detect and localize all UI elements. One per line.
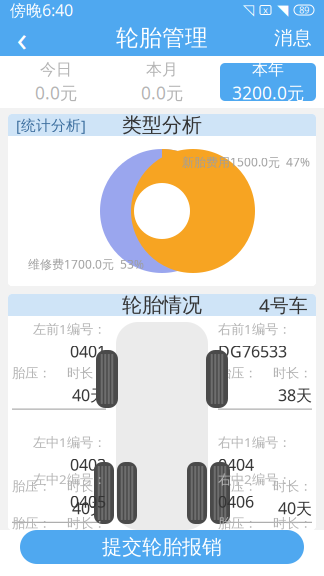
staticText: 0.0元 (35, 81, 77, 104)
staticText: 本月 (146, 60, 178, 79)
staticText: 胎压： (218, 515, 257, 532)
staticText: 时长： (67, 478, 106, 495)
staticText: 新胎费用1500.0元 47% (182, 154, 310, 170)
staticText: 胎压： (12, 478, 51, 495)
staticText: 0404 (218, 454, 254, 475)
staticText: 0403 (70, 454, 106, 475)
staticText: 40天 (72, 384, 106, 405)
staticText: 轮胎情况 (122, 293, 202, 317)
staticText: ◹ (243, 2, 254, 18)
staticText: 提交轮胎报销 (102, 535, 222, 559)
staticText: 右中2编号： (218, 470, 291, 488)
staticText: 左中2编号： (33, 470, 106, 488)
button[interactable]: 本月 (114, 63, 210, 101)
staticText: 今日 (40, 60, 72, 79)
staticText: ◥ (277, 2, 288, 18)
staticText: 胎压： (12, 365, 51, 381)
staticText: 类型分析 (122, 113, 202, 137)
staticText: 89 (299, 4, 309, 16)
staticText: 3200.0元 (232, 81, 304, 104)
staticText: 胎压： (218, 365, 257, 381)
staticText: 40天 (278, 534, 312, 556)
staticText: DG76533 (218, 341, 287, 362)
staticText: 本年 (252, 60, 284, 79)
staticText: 右前1编号： (218, 320, 291, 338)
staticText: 时长： (273, 515, 312, 532)
button[interactable]: Back (0, 20, 44, 56)
staticText: ‹ (16, 15, 27, 61)
staticText: 右中1编号： (218, 433, 291, 451)
button[interactable]: 今日 (8, 63, 104, 101)
staticText: 傍晚6:40 (10, 0, 73, 21)
staticText: 消息 (274, 26, 312, 49)
staticText: 0406 (218, 491, 254, 512)
staticText: 40天 (72, 534, 106, 556)
staticText: 0.0元 (141, 81, 183, 104)
staticText: x (263, 4, 268, 16)
staticText: 40天 (72, 497, 106, 519)
button[interactable]: 提交轮胎报销 (20, 530, 304, 564)
staticText: 40天 (278, 497, 312, 519)
staticText: 时长： (67, 515, 106, 532)
staticText: [统计分析] (16, 115, 86, 135)
staticText: 时长： (273, 478, 312, 495)
staticText: 时长： (67, 365, 106, 381)
staticText: 38天 (278, 384, 312, 405)
staticText: 轮胎管理 (116, 24, 208, 52)
button[interactable]: 消息 (262, 20, 324, 56)
staticText: 时长： (273, 365, 312, 381)
staticText: 左中1编号： (33, 433, 106, 451)
staticText: 4号车 (259, 293, 308, 317)
staticText: 0405 (70, 491, 106, 512)
staticText: 0401 (70, 341, 106, 362)
button[interactable]: 本年 (220, 63, 316, 101)
staticText: 维修费1700.0元 53% (28, 256, 144, 272)
staticText: 左前1编号： (33, 320, 106, 338)
staticText: 胎压： (218, 478, 257, 495)
staticText: 胎压： (12, 515, 51, 532)
